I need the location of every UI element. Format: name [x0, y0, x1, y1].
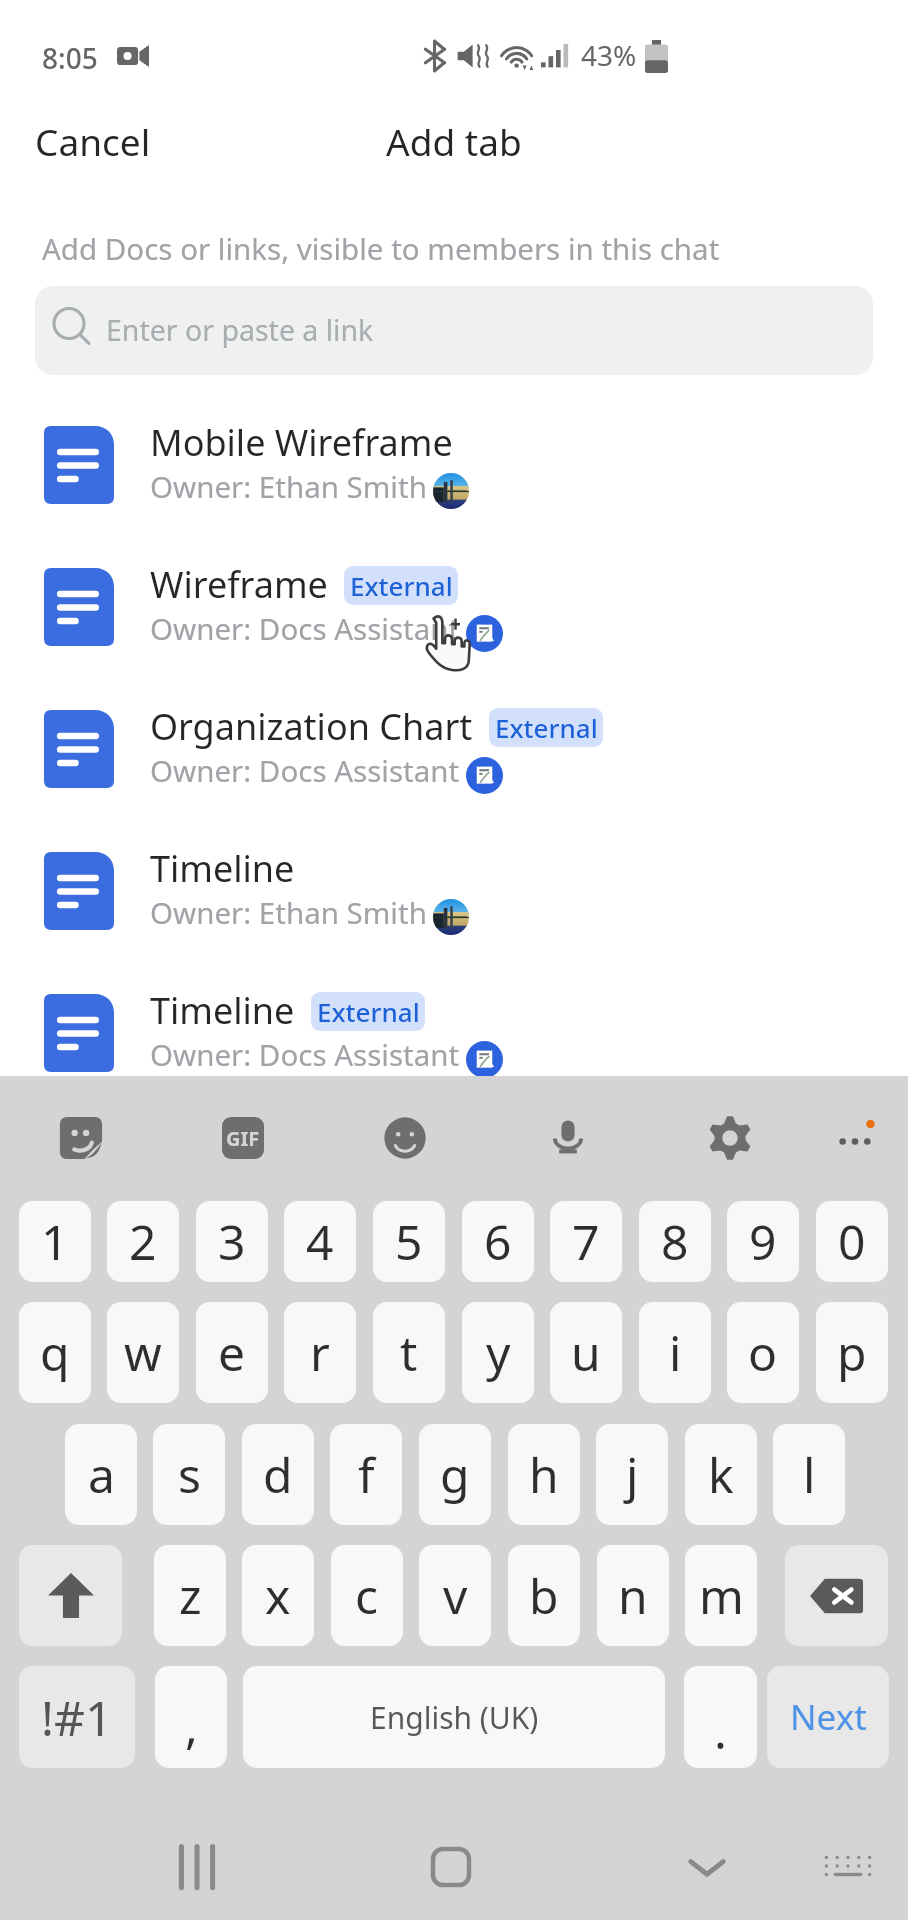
button[interactable]: Next — [767, 1666, 889, 1768]
staticText: External — [495, 710, 598, 745]
button[interactable]: f — [330, 1424, 402, 1525]
button[interactable]: English (UK) — [243, 1666, 665, 1768]
button[interactable]: v — [419, 1545, 491, 1646]
button[interactable]: n — [597, 1545, 669, 1646]
button[interactable]: Cancel — [11, 104, 175, 178]
staticText: 6 — [484, 1209, 512, 1274]
button[interactable]: 4 — [284, 1201, 356, 1282]
button[interactable]: Shift — [19, 1545, 122, 1646]
button[interactable]: 6 — [462, 1201, 534, 1282]
button[interactable]: Enter or paste a link — [35, 286, 873, 375]
staticText: b — [529, 1563, 559, 1628]
button[interactable]: 9 — [727, 1201, 799, 1282]
staticText: Enter or paste a link — [106, 311, 374, 350]
staticText: w — [124, 1320, 162, 1385]
button[interactable]: 8 — [639, 1201, 711, 1282]
button[interactable]: 3 — [196, 1201, 268, 1282]
button[interactable]: Organization Chart — [0, 687, 908, 829]
button[interactable]: e — [196, 1302, 268, 1403]
staticText: t — [400, 1320, 418, 1385]
button[interactable]: . — [684, 1666, 757, 1768]
button[interactable]: Timeline — [0, 829, 908, 971]
button[interactable]: r — [284, 1302, 356, 1403]
button[interactable]: !#1 — [19, 1666, 135, 1768]
button[interactable]: g — [419, 1424, 491, 1525]
staticText: k — [708, 1442, 734, 1507]
staticText: !#1 — [41, 1685, 113, 1750]
button[interactable]: Recents — [161, 1831, 233, 1903]
staticText: . — [714, 1698, 727, 1763]
button[interactable]: q — [19, 1302, 91, 1403]
staticText: o — [748, 1320, 778, 1385]
button[interactable]: c — [331, 1545, 403, 1646]
button[interactable]: d — [242, 1424, 314, 1525]
button[interactable]: o — [727, 1302, 799, 1403]
button[interactable]: 0 — [816, 1201, 888, 1282]
button[interactable]: Emoji — [375, 1108, 435, 1168]
button[interactable]: t — [373, 1302, 445, 1403]
button[interactable]: Back — [671, 1831, 743, 1903]
button[interactable]: s — [153, 1424, 225, 1525]
staticText: m — [699, 1563, 744, 1628]
button[interactable]: Stickers — [51, 1108, 111, 1168]
button[interactable]: Voice input — [538, 1108, 598, 1168]
button[interactable]: p — [816, 1302, 888, 1403]
staticText: c — [355, 1563, 379, 1628]
button[interactable]: Hide keyboard — [812, 1831, 884, 1903]
button[interactable]: l — [773, 1424, 845, 1525]
staticText: Next — [790, 1693, 867, 1741]
staticText: z — [179, 1563, 202, 1628]
staticText: v — [443, 1563, 468, 1628]
staticText: 4 — [306, 1209, 334, 1274]
staticText: p — [837, 1320, 867, 1385]
staticText: i — [669, 1320, 682, 1385]
button[interactable]: y — [462, 1302, 534, 1403]
staticText: 9 — [749, 1209, 777, 1274]
staticText: e — [218, 1320, 246, 1385]
staticText: Timeline — [150, 844, 295, 893]
button[interactable]: More options — [825, 1108, 885, 1168]
button[interactable]: , — [155, 1666, 227, 1768]
staticText: Owner: Ethan Smith — [150, 892, 427, 932]
button[interactable]: Settings — [700, 1108, 760, 1168]
button[interactable]: u — [550, 1302, 622, 1403]
staticText: Wireframe — [150, 560, 328, 609]
staticText: External — [350, 568, 453, 603]
staticText: 7 — [572, 1209, 600, 1274]
button[interactable]: Backspace — [785, 1545, 888, 1646]
button[interactable]: Wireframe — [0, 545, 908, 687]
staticText: j — [626, 1442, 639, 1507]
button[interactable]: 5 — [373, 1201, 445, 1282]
button[interactable]: b — [508, 1545, 580, 1646]
button[interactable]: m — [685, 1545, 757, 1646]
button[interactable]: w — [107, 1302, 179, 1403]
staticText: Cancel — [35, 116, 151, 166]
button[interactable]: 1 — [19, 1201, 91, 1282]
button[interactable]: k — [685, 1424, 757, 1525]
button[interactable]: 2 — [107, 1201, 179, 1282]
staticText: s — [178, 1442, 201, 1507]
staticText: Timeline — [150, 986, 295, 1035]
staticText: 0 — [838, 1209, 866, 1274]
staticText: Add tab — [386, 116, 522, 166]
staticText: English (UK) — [370, 1697, 539, 1738]
staticText: n — [618, 1563, 648, 1628]
button[interactable]: a — [65, 1424, 137, 1525]
button[interactable]: Timeline — [0, 971, 908, 1113]
staticText: 8:05 — [42, 39, 98, 77]
button[interactable]: z — [154, 1545, 226, 1646]
staticText: Add Docs or links, visible to members in… — [42, 228, 720, 268]
button[interactable]: i — [639, 1302, 711, 1403]
staticText: Owner: Docs Assistant — [150, 1034, 460, 1074]
button[interactable]: 7 — [550, 1201, 622, 1282]
button[interactable]: Home — [415, 1831, 487, 1903]
staticText: h — [529, 1442, 559, 1507]
button[interactable]: GIF — [213, 1108, 273, 1168]
button[interactable]: x — [242, 1545, 314, 1646]
button[interactable]: j — [596, 1424, 668, 1525]
button[interactable]: h — [508, 1424, 580, 1525]
staticText: u — [571, 1320, 601, 1385]
staticText: Owner: Docs Assistant — [150, 608, 460, 648]
button[interactable]: Mobile Wireframe — [0, 403, 908, 545]
staticText: , — [185, 1693, 198, 1758]
